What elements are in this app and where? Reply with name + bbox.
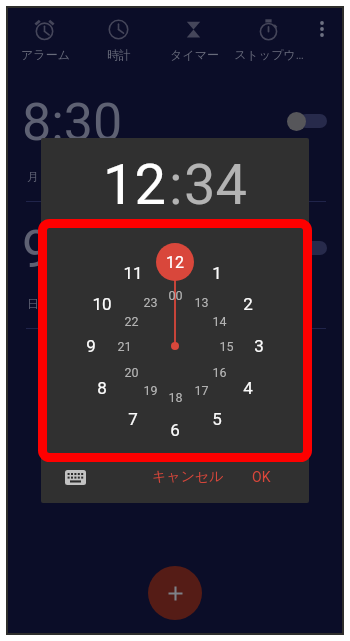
button[interactable]: 時計 [81, 8, 155, 62]
button[interactable]: アラーム [7, 8, 81, 62]
button[interactable]: 7 [117, 406, 149, 432]
button[interactable]: 21 [108, 333, 140, 359]
staticText: 00 [168, 288, 183, 303]
staticText: 日 [27, 296, 39, 311]
staticText: 10 [92, 294, 112, 314]
button[interactable]: 9 [75, 333, 107, 359]
staticText: 21 [117, 339, 132, 354]
button[interactable]: 20 [115, 359, 147, 385]
button[interactable]: 8:30 [8, 88, 342, 215]
staticText: 13 [194, 295, 209, 310]
staticText: 8:30 [22, 92, 123, 153]
staticText: キャンセル [152, 468, 224, 486]
staticText: 3 [254, 336, 264, 356]
staticText: : [169, 152, 183, 218]
button[interactable]: 2 [232, 291, 264, 317]
button[interactable]: 8 [86, 375, 118, 401]
staticText: 23 [143, 295, 158, 310]
staticText: 20 [124, 365, 139, 380]
staticText: アラーム [21, 47, 70, 62]
button[interactable]: 12 [103, 152, 166, 218]
staticText: 8 [97, 378, 107, 398]
button[interactable]: 14 [203, 308, 235, 334]
staticText: 7 [128, 409, 138, 429]
staticText: 5 [212, 409, 222, 429]
button[interactable]: 34 [184, 152, 247, 218]
button[interactable]: Switch to text input [60, 465, 90, 489]
staticText: 19 [143, 383, 158, 398]
staticText: ストップウ… [234, 47, 304, 62]
staticText: 2 [243, 294, 253, 314]
button[interactable]: 6 [159, 417, 191, 443]
staticText: 22 [124, 314, 139, 329]
staticText: 15 [219, 339, 234, 354]
button[interactable]: 5 [201, 406, 233, 432]
staticText: 11 [123, 263, 143, 283]
staticText: 12 [166, 253, 184, 272]
button[interactable]: 11 [117, 260, 149, 286]
staticText: 16 [212, 365, 227, 380]
button[interactable]: キャンセル [152, 463, 224, 491]
button[interactable]: Add alarm [148, 566, 202, 620]
button[interactable]: 15 [210, 333, 242, 359]
staticText: 14 [212, 314, 227, 329]
button[interactable]: 10 [86, 291, 118, 317]
staticText: 18 [168, 390, 183, 405]
button[interactable]: ストップウ… [231, 8, 305, 62]
button[interactable]: 18 [159, 384, 191, 410]
button[interactable]: More options [308, 15, 336, 43]
button[interactable]: 4 [232, 375, 264, 401]
button[interactable]: 12 [159, 249, 191, 275]
staticText: 9:00 [22, 219, 123, 280]
staticText: 1 [212, 263, 222, 283]
staticText: タイマー [170, 47, 219, 62]
button[interactable]: 23 [134, 289, 166, 315]
button[interactable]: タイマー [156, 8, 230, 62]
button[interactable]: Toggle alarm [287, 109, 327, 133]
button[interactable]: 3 [243, 333, 275, 359]
button[interactable]: 1 [201, 260, 233, 286]
button[interactable]: 22 [115, 308, 147, 334]
button[interactable]: 16 [203, 359, 235, 385]
staticText: 9 [86, 336, 96, 356]
staticText: 月・火・水・木・金 [27, 169, 135, 184]
button[interactable]: OK [252, 463, 271, 491]
button[interactable]: 00 [159, 282, 191, 308]
staticText: 17 [194, 383, 209, 398]
staticText: OK [252, 469, 271, 485]
button[interactable]: 9:00 [8, 215, 342, 342]
button[interactable]: 13 [185, 289, 217, 315]
button[interactable]: 17 [185, 377, 217, 403]
button[interactable]: Toggle alarm [287, 236, 327, 260]
staticText: 4 [243, 378, 253, 398]
staticText: 時計 [107, 47, 131, 62]
staticText: 6 [170, 420, 180, 440]
button[interactable]: 19 [134, 377, 166, 403]
